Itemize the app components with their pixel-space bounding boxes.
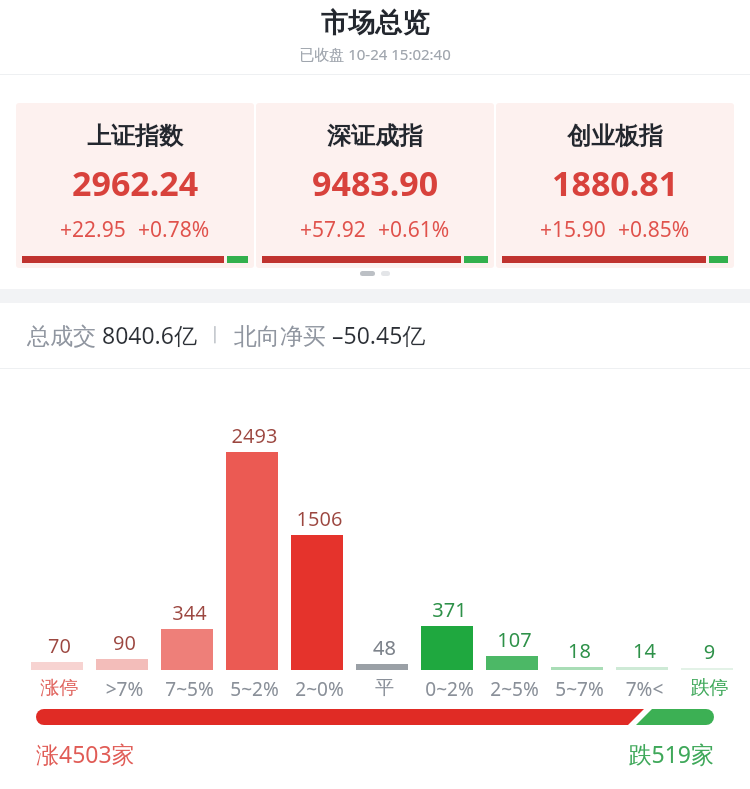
staticText: 丨: [197, 322, 234, 347]
staticText: 北向净买: [234, 319, 332, 350]
button[interactable]: 2~5%: [477, 676, 552, 702]
staticText: 344: [152, 599, 227, 626]
staticText: 市场总览: [0, 6, 750, 40]
staticText: 已收盘 10-24 15:02:40: [0, 44, 750, 64]
staticText: 1506: [282, 505, 357, 532]
staticText: 0~2%: [412, 676, 487, 702]
button[interactable]: 总成交: [27, 319, 750, 350]
button[interactable]: 涨停: [22, 676, 97, 700]
staticText: 创业板指: [567, 121, 663, 151]
staticText: +22.95: [60, 215, 126, 244]
staticText: 1880.81: [552, 160, 679, 206]
button[interactable]: 深证成指: [256, 103, 494, 268]
staticText: +57.92: [300, 215, 366, 244]
staticText: +0.78%: [138, 215, 210, 244]
button[interactable]: 上证指数: [16, 103, 254, 268]
staticText: +0.61%: [378, 215, 450, 244]
staticText: 5~7%: [542, 676, 617, 702]
staticText: 7%<: [607, 676, 682, 702]
staticText: 涨停: [22, 676, 97, 700]
staticText: 2962.24: [72, 160, 199, 206]
staticText: 14: [607, 637, 682, 664]
staticText: +0.85%: [618, 215, 690, 244]
button[interactable]: 7~5%: [152, 676, 227, 702]
button[interactable]: 5~2%: [217, 676, 292, 702]
staticText: 371: [412, 596, 487, 623]
button[interactable]: 7%<: [607, 676, 682, 702]
button[interactable]: 平: [347, 676, 422, 700]
button[interactable]: 2~0%: [282, 676, 357, 702]
staticText: 深证成指: [327, 121, 423, 151]
staticText: 107: [477, 626, 552, 653]
staticText: 2~0%: [282, 676, 357, 702]
staticText: 跌519家: [628, 738, 714, 769]
staticText: 18: [542, 637, 617, 664]
staticText: 2~5%: [477, 676, 552, 702]
staticText: 7~5%: [152, 676, 227, 702]
staticText: +15.90: [540, 215, 606, 244]
staticText: 2493: [217, 422, 292, 449]
staticText: 上证指数: [87, 121, 183, 151]
button[interactable]: 创业板指: [496, 103, 734, 268]
button[interactable]: 跌停: [672, 676, 747, 700]
staticText: –50.45亿: [332, 319, 426, 350]
staticText: 9483.90: [312, 160, 439, 206]
staticText: >7%: [87, 676, 162, 702]
button[interactable]: >7%: [87, 676, 162, 702]
staticText: 跌停: [672, 676, 747, 700]
staticText: 48: [347, 634, 422, 661]
staticText: 总成交: [27, 319, 102, 350]
button[interactable]: 0~2%: [412, 676, 487, 702]
button[interactable]: 5~7%: [542, 676, 617, 702]
staticText: 9: [672, 638, 747, 665]
staticText: 8040.6亿: [102, 319, 197, 350]
staticText: 平: [347, 676, 422, 700]
staticText: 涨4503家: [36, 738, 135, 769]
staticText: 90: [87, 629, 162, 656]
staticText: 70: [22, 632, 97, 659]
staticText: 5~2%: [217, 676, 292, 702]
